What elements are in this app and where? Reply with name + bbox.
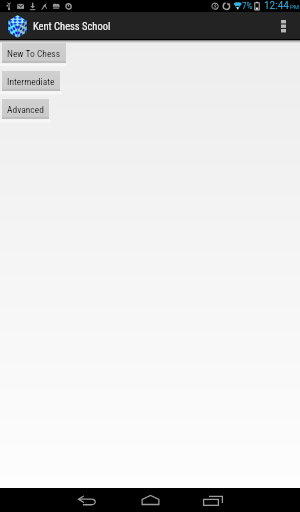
button[interactable]: Recent apps (191, 488, 235, 512)
button[interactable]: Intermediate (2, 71, 60, 91)
button[interactable]: Advanced (2, 99, 49, 119)
staticText: Kent Chess School (33, 20, 111, 32)
staticText: PM (290, 3, 300, 10)
staticText: Intermediate (7, 76, 55, 87)
staticText: 12:44 (264, 0, 289, 12)
button[interactable]: Back (65, 488, 109, 512)
staticText: New To Chess (7, 48, 61, 59)
button[interactable]: More options (266, 13, 300, 39)
staticText: 7% (242, 1, 253, 11)
button[interactable]: New To Chess (2, 43, 66, 63)
button[interactable]: Home (128, 488, 172, 512)
staticText: Advanced (7, 104, 44, 115)
